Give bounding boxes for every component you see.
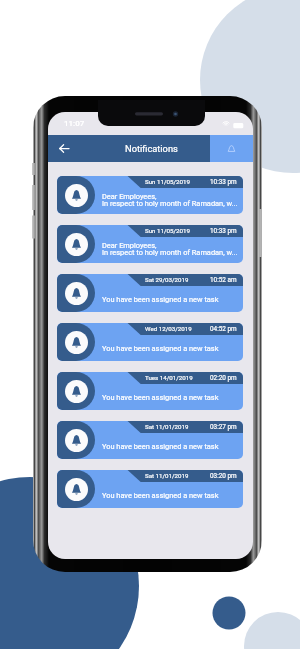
button[interactable]: Sun 11/05/2019 xyxy=(57,176,243,214)
staticText: Sat 11/01/2019 xyxy=(145,423,189,430)
staticText: Tues 14/01/2019 xyxy=(145,374,193,381)
staticText: You have been assigned a new task xyxy=(102,491,219,500)
staticText: You have been assigned a new task xyxy=(102,344,219,353)
staticText: Sat 29/03/2019 xyxy=(145,276,189,283)
staticText: 02:20 pm xyxy=(210,374,237,382)
staticText: 10:33 pm xyxy=(210,178,237,186)
staticText: 04:52 pm xyxy=(210,325,237,333)
staticText: In respect to holy month of Ramadan, w..… xyxy=(102,199,238,208)
staticText: 10:33 pm xyxy=(210,227,237,235)
button[interactable]: Sat 11/01/2019 xyxy=(57,470,243,508)
button[interactable]: Wed 12/03/2019 xyxy=(57,323,243,361)
staticText: 03:27 pm xyxy=(210,423,237,431)
button[interactable]: Sat 29/03/2019 xyxy=(57,274,243,312)
staticText: Sat 11/01/2019 xyxy=(145,472,189,479)
staticText: Sun 11/05/2019 xyxy=(145,227,190,234)
button[interactable]: Back xyxy=(48,135,80,162)
staticText: 10:52 am xyxy=(210,276,237,284)
button[interactable]: Tues 14/01/2019 xyxy=(57,372,243,410)
staticText: Dear Employees, xyxy=(102,192,157,201)
staticText: Notifications xyxy=(125,143,178,154)
staticText: You have been assigned a new task xyxy=(102,393,219,402)
staticText: Sun 11/05/2019 xyxy=(145,178,190,185)
button[interactable]: Notifications xyxy=(210,135,253,162)
staticText: You have been assigned a new task xyxy=(102,442,219,451)
staticText: 11:07 xyxy=(64,119,85,128)
button[interactable]: Sat 11/01/2019 xyxy=(57,421,243,459)
staticText: 03:20 pm xyxy=(210,472,237,480)
staticText: Dear Employees, xyxy=(102,241,157,250)
staticText: You have been assigned a new task xyxy=(102,295,219,304)
staticText: Wed 12/03/2019 xyxy=(145,325,192,332)
button[interactable]: Sun 11/05/2019 xyxy=(57,225,243,263)
staticText: In respect to holy month of Ramadan, w..… xyxy=(102,248,238,257)
